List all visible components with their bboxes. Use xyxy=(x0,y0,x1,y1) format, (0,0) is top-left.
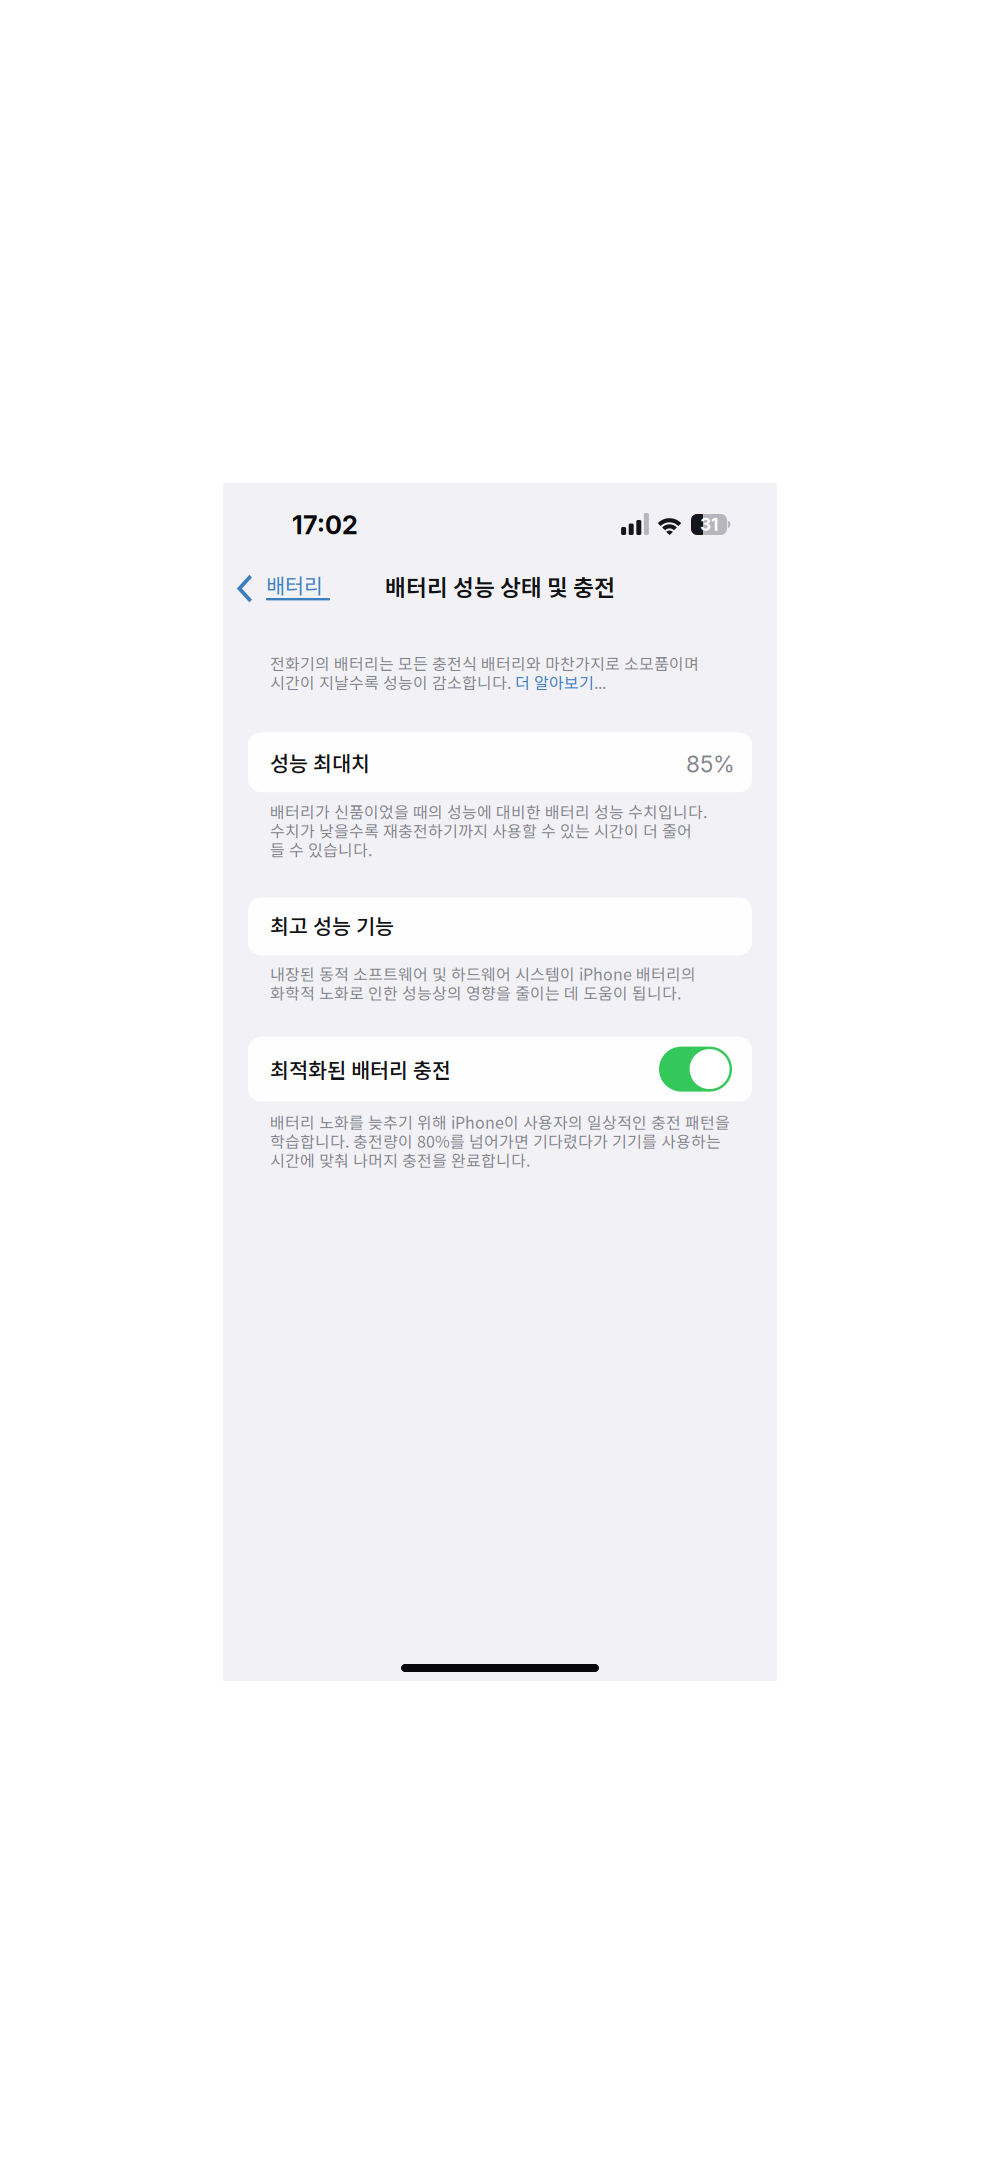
staticText: 전화기의 배터리는 모든 충전식 배터리와 마찬가지로 소모품이며 xyxy=(270,651,699,675)
button[interactable]: 최적화된 배터리 충전 xyxy=(223,1037,777,1102)
staticText: 배터리 노화를 늦추기 위해 iPhone이 사용자의 일상적인 충전 패턴을 xyxy=(270,1110,730,1133)
staticText: 85% xyxy=(686,750,735,778)
staticText: 최적화된 배터리 충전 xyxy=(270,1054,451,1084)
staticText: 더 알아보기 xyxy=(515,670,594,694)
staticText: 수치가 낮을수록 재충전하기까지 사용할 수 있는 시간이 더 줄어 xyxy=(270,819,692,842)
staticText: 들 수 있습니다. xyxy=(270,838,372,861)
staticText: 성능 최대치 xyxy=(270,747,370,777)
button[interactable]: 배터리 xyxy=(223,564,330,608)
staticText: 31 xyxy=(700,514,718,535)
button[interactable]: 최고 성능 기능 xyxy=(223,897,777,955)
button[interactable]: 성능 최대치 xyxy=(223,732,777,792)
staticText: 시간이 지날수록 성능이 감소합니다. xyxy=(270,670,515,694)
staticText: 배터리 성능 상태 및 충전 xyxy=(385,570,615,602)
staticText: 학습합니다. 충전량이 80%를 넘어가면 기다렸다가 기기를 사용하는 xyxy=(270,1129,721,1152)
staticText: 17:02 xyxy=(292,510,358,540)
staticText: 내장된 동적 소프트웨어 및 하드웨어 시스템이 iPhone 배터리의 xyxy=(270,962,696,985)
staticText: 배터리 xyxy=(266,569,323,599)
staticText: 배터리가 신품이었을 때의 성능에 대비한 배터리 성능 수치입니다. xyxy=(270,800,707,823)
staticText: 화학적 노화로 인한 성능상의 영향을 줄이는 데 도움이 됩니다. xyxy=(270,981,681,1004)
staticText: ... xyxy=(594,670,606,694)
staticText: 최고 성능 기능 xyxy=(270,910,394,940)
staticText: 시간에 맞춰 나머지 충전을 완료합니다. xyxy=(270,1148,530,1171)
